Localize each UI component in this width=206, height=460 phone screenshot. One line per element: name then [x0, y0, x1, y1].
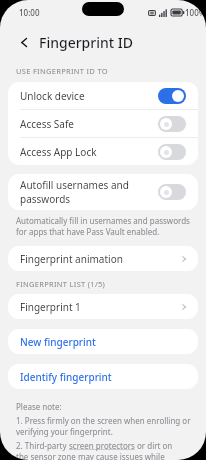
staticText: New fingerprint	[20, 335, 96, 349]
button[interactable]: On	[158, 88, 186, 104]
button[interactable]: screen protectors	[69, 440, 137, 451]
staticText: Fingerprint ID	[39, 33, 133, 52]
staticText: 2. Third-party	[16, 440, 69, 451]
staticText: Fingerprint 1	[20, 300, 180, 314]
button[interactable]: Back	[14, 32, 34, 52]
button[interactable]: Off	[158, 184, 186, 200]
staticText: USE FINGERPRINT ID TO	[16, 66, 108, 76]
button[interactable]: Identify fingerprint	[8, 364, 198, 389]
button[interactable]: Off	[158, 116, 186, 132]
staticText: Fingerprint animation	[20, 252, 180, 266]
button[interactable]: Access Safe	[8, 110, 198, 137]
staticText: 1. Press firmly on the screen when enrol…	[16, 415, 191, 426]
staticText: passwords	[20, 192, 71, 206]
button[interactable]: Access App Lock	[8, 138, 198, 165]
staticText: 10:00	[19, 7, 40, 18]
button[interactable]: Unlock device	[8, 82, 198, 109]
button[interactable]: Fingerprint 1	[8, 294, 198, 319]
staticText: Unlock device	[20, 89, 158, 103]
staticText: Identify fingerprint	[20, 370, 112, 384]
button[interactable]: Off	[158, 144, 186, 160]
button[interactable]: New fingerprint	[8, 329, 198, 354]
staticText: Access Safe	[20, 117, 158, 131]
button[interactable]: Autofill usernames and	[8, 174, 198, 210]
staticText: Autofill usernames and	[20, 178, 129, 192]
staticText: Automatically fill in usernames and pass…	[16, 215, 190, 226]
staticText: verifying your fingerprint.	[16, 426, 113, 437]
staticText: 100%	[185, 7, 206, 18]
staticText: FINGERPRINT LIST (1/5)	[16, 279, 106, 289]
staticText: or dirt on	[137, 440, 173, 451]
staticText: Please note:	[16, 401, 62, 412]
button[interactable]: Fingerprint animation	[8, 246, 198, 271]
staticText: the sensor zone may cause issues while	[16, 451, 165, 460]
staticText: for apps that have Pass Vault enabled.	[16, 226, 160, 237]
staticText: Access App Lock	[20, 145, 158, 159]
